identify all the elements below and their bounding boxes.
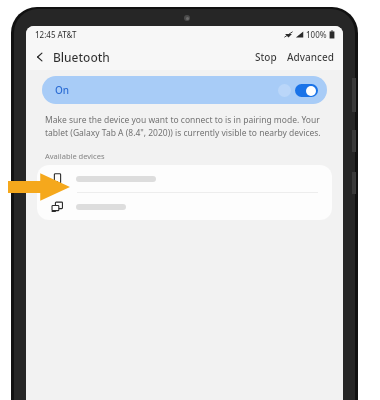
button[interactable]: On — [42, 76, 327, 104]
button[interactable]: Phone device — [37, 165, 332, 192]
other: Screen device — [51, 200, 64, 213]
button[interactable]: Screen device — [37, 193, 332, 220]
button[interactable]: Advanced — [282, 46, 343, 68]
other: Bluetooth on — [295, 84, 318, 97]
staticText: Make sure the device you want to connect… — [45, 114, 321, 139]
staticText: Available devices — [45, 151, 105, 161]
button[interactable]: Stop — [250, 46, 282, 68]
staticText: Bluetooth — [53, 49, 110, 65]
staticText: 100% — [306, 29, 327, 40]
button[interactable]: Back — [26, 46, 114, 68]
other: Back — [34, 51, 46, 63]
staticText: On — [55, 83, 70, 97]
other: Phone device — [51, 172, 64, 185]
staticText: 12:45 AT&T — [35, 29, 77, 40]
